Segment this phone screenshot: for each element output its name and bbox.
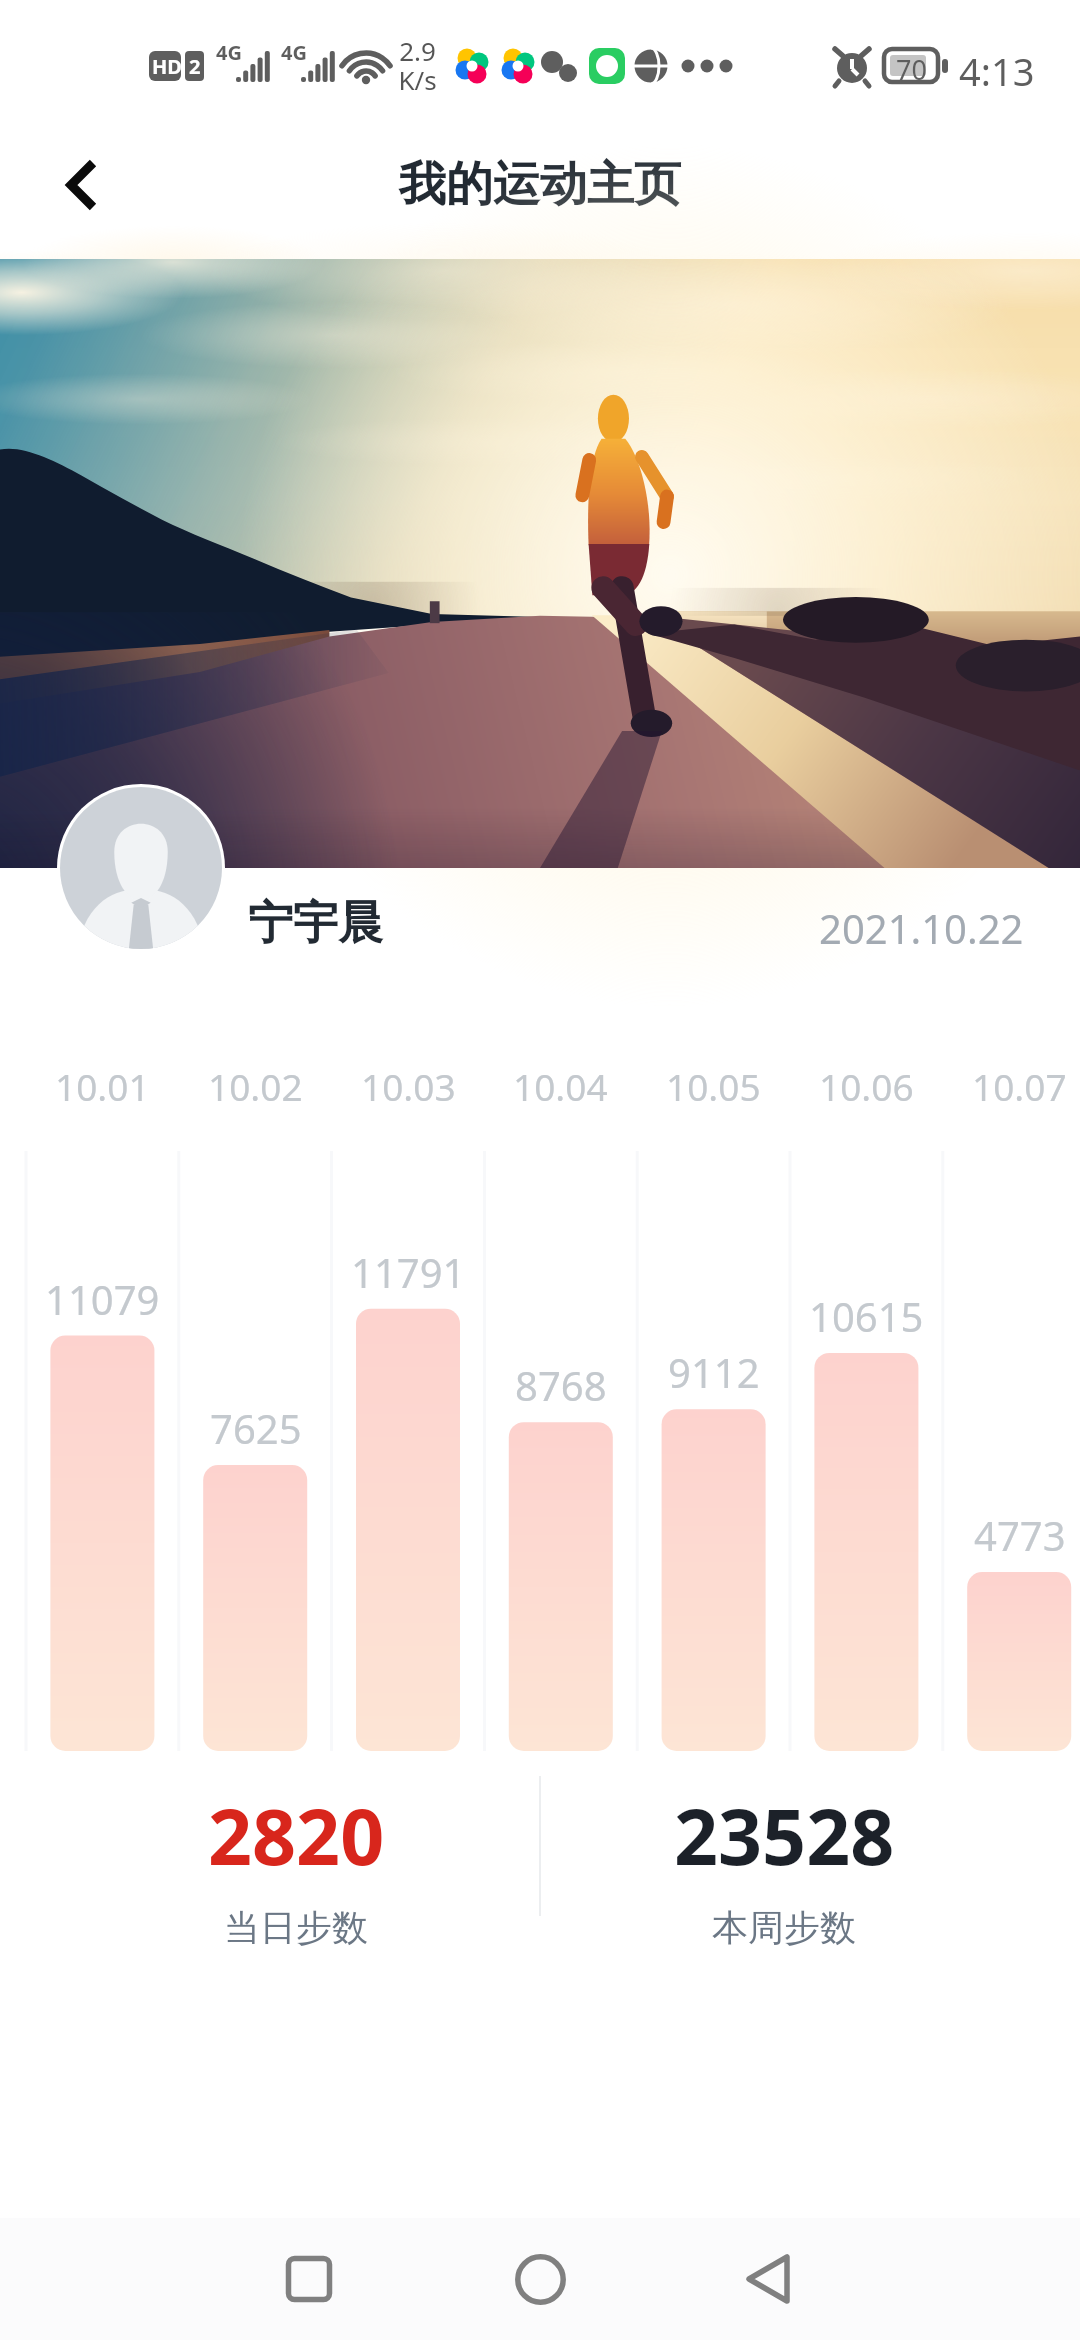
staticText: 10.07	[972, 1061, 1067, 1111]
staticText: 10.02	[208, 1061, 303, 1111]
staticText: 70	[896, 51, 927, 88]
staticText: 10615	[809, 1289, 924, 1343]
staticText: 10.04	[513, 1061, 608, 1111]
staticText: 8768	[515, 1358, 607, 1412]
staticText: 4G	[281, 39, 307, 66]
staticText: 4773	[974, 1508, 1066, 1562]
button[interactable]: 2820	[53, 1750, 539, 1950]
button[interactable]: 23528	[541, 1750, 1027, 1950]
staticText: 11791	[351, 1245, 466, 1299]
staticText: 10.01	[55, 1061, 150, 1111]
staticText: 本周步数	[712, 1905, 856, 1950]
button[interactable]: Back	[0, 120, 130, 250]
staticText: 我的运动主页	[399, 155, 681, 214]
button[interactable]: Back	[707, 2218, 829, 2340]
staticText: 10.03	[361, 1061, 456, 1111]
staticText: 2021.10.22	[819, 901, 1024, 955]
staticText: 当日步数	[224, 1905, 368, 1950]
button[interactable]: Profile photo	[57, 784, 225, 952]
staticText: 10.05	[666, 1061, 761, 1111]
staticText: 2820	[208, 1783, 385, 1888]
button[interactable]: Home	[479, 2218, 601, 2340]
staticText: 9112	[668, 1345, 760, 1399]
staticText: 2	[189, 53, 201, 80]
staticText: 10.06	[819, 1061, 914, 1111]
staticText: 4G	[216, 39, 242, 66]
staticText: 11079	[45, 1272, 160, 1326]
button[interactable]: Recent apps	[248, 2218, 370, 2340]
staticText: 4:13	[959, 45, 1035, 97]
staticText: HD	[152, 53, 182, 80]
staticText: 23528	[674, 1783, 895, 1888]
staticText: 7625	[210, 1401, 302, 1455]
staticText: 2.9 K/s	[398, 33, 437, 97]
staticText: 宁宇晨	[248, 895, 383, 952]
